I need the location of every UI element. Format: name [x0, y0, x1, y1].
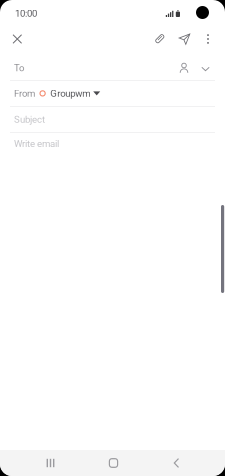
- staticText: Groupwm: [50, 88, 90, 99]
- button[interactable]: Write email: [0, 133, 225, 155]
- staticText: Subject: [14, 114, 45, 125]
- staticText: To: [14, 62, 24, 74]
- staticText: 10:00: [15, 8, 37, 19]
- button[interactable]: From: [0, 81, 225, 106]
- staticText: From: [14, 88, 35, 99]
- button[interactable]: Home: [82, 450, 145, 476]
- button[interactable]: Attach file: [147, 27, 172, 51]
- button[interactable]: More options: [197, 27, 219, 51]
- staticText: Write email: [14, 138, 59, 149]
- button[interactable]: Close: [0, 27, 41, 51]
- button[interactable]: Choose contacts: [173, 55, 195, 77]
- button[interactable]: Back: [145, 450, 208, 476]
- button[interactable]: Send: [172, 27, 197, 51]
- button[interactable]: Recent apps: [19, 450, 82, 476]
- button[interactable]: Show Cc and Bcc: [195, 55, 216, 77]
- button[interactable]: Subject: [0, 107, 225, 132]
